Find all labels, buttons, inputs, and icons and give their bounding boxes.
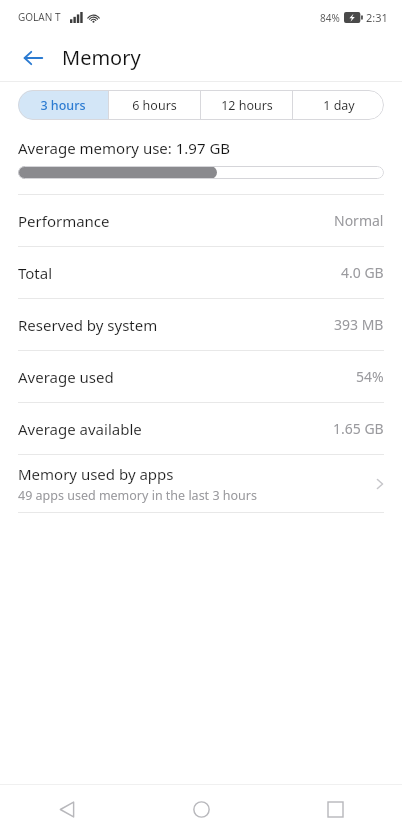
button[interactable]: 6 hours [109, 90, 200, 120]
staticText: 1.65 GB [333, 419, 384, 438]
staticText: Memory [62, 44, 141, 71]
staticText: Average available [18, 419, 142, 439]
button[interactable]: Average available [0, 403, 402, 454]
button[interactable]: Average used [0, 351, 402, 402]
staticText: Memory used by apps [18, 464, 174, 484]
staticText: Average used [18, 367, 114, 387]
staticText: 54% [356, 367, 384, 386]
staticText: Normal [334, 211, 384, 230]
staticText: 84% [320, 11, 340, 25]
button[interactable]: Total [0, 247, 402, 298]
staticText: 12 hours [221, 97, 273, 114]
staticText: Total [18, 263, 53, 283]
button[interactable]: 12 hours [201, 90, 292, 120]
button[interactable]: Performance [0, 195, 402, 246]
button[interactable]: Back [0, 785, 134, 833]
button[interactable]: 1 day [293, 90, 384, 120]
staticText: 49 apps used memory in the last 3 hours [18, 487, 257, 504]
staticText: 393 MB [334, 315, 384, 334]
staticText: GOLAN T [18, 10, 61, 24]
button[interactable]: 3 hours [18, 90, 108, 120]
staticText: 6 hours [132, 97, 177, 114]
staticText: 1 day [323, 97, 355, 114]
button[interactable]: Reserved by system [0, 299, 402, 350]
button[interactable]: Back [10, 35, 56, 81]
staticText: Average memory use: 1.97 GB [18, 138, 231, 158]
button[interactable]: Memory used by apps [0, 455, 402, 512]
button[interactable]: Home [134, 785, 268, 833]
staticText: 2:31 [366, 10, 388, 25]
staticText: Performance [18, 211, 110, 231]
button[interactable]: Recent apps [268, 785, 402, 833]
staticText: Reserved by system [18, 315, 158, 335]
staticText: 3 hours [40, 97, 86, 114]
staticText: 4.0 GB [341, 263, 384, 282]
